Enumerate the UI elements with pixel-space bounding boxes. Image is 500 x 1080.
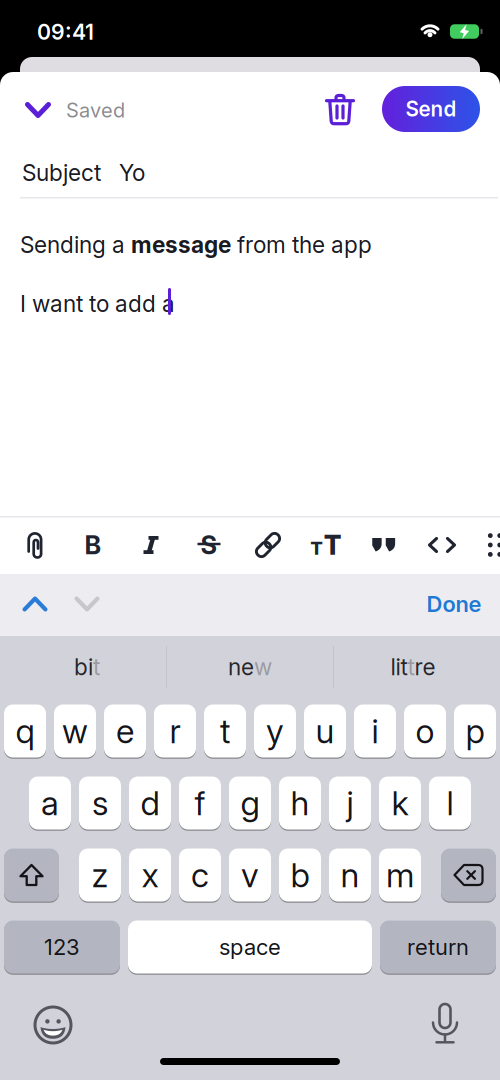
staticText: I want to add a [20,290,175,317]
button[interactable]: Code [419,519,465,571]
button[interactable]: Attach file [12,519,58,571]
staticText: u [315,711,334,751]
button[interactable]: o [404,704,446,758]
staticText: t [220,711,230,751]
button[interactable]: f [179,776,221,830]
staticText: re [414,653,435,681]
button[interactable]: Emoji [31,1003,75,1047]
button[interactable]: j [329,776,371,830]
staticText: j [346,783,353,823]
button[interactable]: ne [171,642,329,692]
staticText: s [92,783,108,823]
staticText: T [310,537,323,559]
staticText: k [391,783,408,823]
button[interactable]: e [104,704,146,758]
button[interactable]: m [379,848,421,902]
staticText: b [290,855,309,895]
button[interactable]: v [229,848,271,902]
button[interactable]: Delete [441,848,496,902]
button[interactable]: g [229,776,271,830]
staticText: d [140,783,159,823]
staticText: w [254,653,272,681]
staticText: x [141,855,158,895]
staticText: c [191,855,209,895]
button[interactable]: l [429,776,471,830]
staticText: y [266,711,284,751]
button[interactable]: z [79,848,121,902]
button[interactable]: Strikethrough [186,519,232,571]
staticText: bi [74,653,93,681]
button[interactable]: u [304,704,346,758]
button[interactable]: r [154,704,196,758]
button[interactable]: Dictate [423,1002,467,1046]
staticText: B [84,530,101,560]
staticText: o [415,711,434,751]
staticText: n [340,855,359,895]
button[interactable]: return [380,920,496,974]
button[interactable]: q [4,704,46,758]
staticText: r [169,711,180,751]
staticText: 09:41 [37,19,94,45]
staticText: Yo [119,159,145,186]
staticText: space [219,934,281,960]
button[interactable]: w [54,704,96,758]
staticText: i [371,711,378,751]
staticText: return [407,934,469,960]
staticText: Done [426,591,481,617]
button[interactable]: Shift [4,848,59,902]
staticText: a [41,783,59,823]
button[interactable]: k [379,776,421,830]
button[interactable]: p [454,704,496,758]
button[interactable]: Delete draft [318,88,362,132]
button[interactable]: Insert link [245,519,291,571]
staticText: S [200,530,217,560]
staticText: Saved [66,98,125,122]
staticText: Send [405,96,456,121]
button[interactable]: lit [334,642,492,692]
staticText: f [194,783,205,823]
staticText: p [465,711,484,751]
button[interactable]: Done [414,582,494,626]
staticText: l [446,783,453,823]
button[interactable]: d [129,776,171,830]
staticText: h [290,783,309,823]
button[interactable]: c [179,848,221,902]
button[interactable]: Previous field [13,582,57,626]
button[interactable]: 123 [4,920,120,974]
button[interactable]: space [128,920,372,974]
button[interactable]: Italic [128,519,174,571]
button[interactable]: Bold [70,519,116,571]
staticText: g [240,783,259,823]
button[interactable]: Next field [65,582,109,626]
staticText: ne [228,653,254,681]
button[interactable]: h [279,776,321,830]
button[interactable]: Text size [303,519,349,571]
button[interactable]: t [204,704,246,758]
button[interactable]: s [79,776,121,830]
staticText: lit [390,653,407,681]
staticText: 123 [44,934,80,960]
staticText: from the app [231,231,372,258]
staticText: t [407,653,414,681]
staticText: m [386,855,414,895]
button[interactable]: x [129,848,171,902]
button[interactable]: Send [382,86,480,132]
button[interactable]: bi [8,642,166,692]
staticText: e [116,711,134,751]
button[interactable]: More formatting [472,519,500,571]
button[interactable]: i [354,704,396,758]
staticText: Subject [22,159,101,186]
button[interactable]: a [29,776,71,830]
staticText: q [15,711,34,751]
button[interactable]: Quote [361,519,407,571]
button[interactable]: n [329,848,371,902]
button[interactable]: b [279,848,321,902]
staticText: t [93,653,100,681]
button[interactable]: Close [18,92,58,128]
staticText: z [91,855,108,895]
staticText: w [62,711,88,751]
staticText: Sending a [20,231,131,258]
button[interactable]: y [254,704,296,758]
staticText: message [131,231,231,258]
staticText: T [324,529,342,561]
